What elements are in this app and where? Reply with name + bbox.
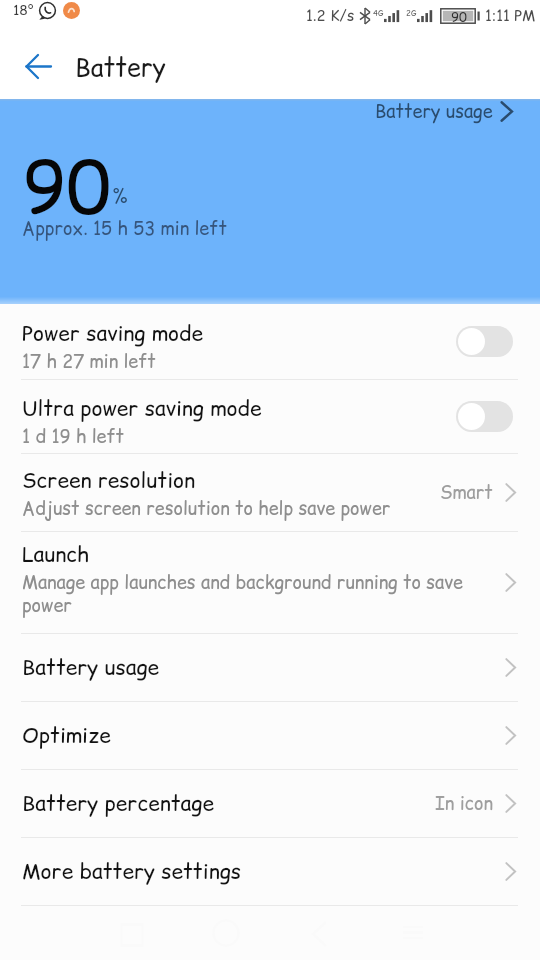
staticText: Optimize <box>22 721 111 750</box>
staticText: 1 d 19 h left <box>22 424 125 449</box>
button[interactable]: Launch <box>0 532 540 633</box>
button[interactable]: Ultra power saving mode <box>0 380 540 453</box>
staticText: Power saving mode <box>22 319 203 348</box>
staticText: Battery usage <box>22 653 160 682</box>
staticText: 4G <box>373 8 384 19</box>
button[interactable]: Back <box>19 47 57 85</box>
button[interactable]: Screen resolution <box>0 454 540 531</box>
staticText: More battery settings <box>22 857 242 886</box>
staticText: 90 <box>451 8 467 24</box>
button[interactable]: Battery usage <box>375 97 513 124</box>
staticText: 17 h 27 min left <box>22 349 156 374</box>
staticText: Approx. 15 h 53 min left <box>22 216 227 241</box>
staticText: 2G <box>406 8 417 19</box>
staticText: 1.2 K/s <box>306 5 355 26</box>
staticText: % <box>112 183 128 210</box>
staticText: Ultra power saving mode <box>22 394 262 423</box>
button[interactable]: Battery usage <box>0 634 540 701</box>
button[interactable]: More battery settings <box>0 838 540 905</box>
staticText: 90 <box>22 136 112 238</box>
staticText: Smart <box>440 480 493 505</box>
staticText: Battery usage <box>375 99 493 124</box>
button[interactable]: Power saving mode <box>0 304 540 379</box>
staticText: Launch <box>22 540 90 569</box>
staticText: In icon <box>435 791 493 816</box>
button[interactable]: Toggle Power saving mode <box>456 326 513 357</box>
staticText: 1:11 PM <box>485 5 536 26</box>
button[interactable]: Toggle Ultra power saving mode <box>456 401 513 432</box>
staticText: Manage app launches and background runni… <box>22 570 463 619</box>
staticText: Battery <box>75 50 166 85</box>
staticText: Battery percentage <box>22 789 214 818</box>
staticText: 18° <box>13 0 34 20</box>
staticText: Adjust screen resolution to help save po… <box>22 496 391 521</box>
button[interactable]: Battery percentage <box>0 770 540 837</box>
staticText: Screen resolution <box>22 466 196 495</box>
button[interactable]: Optimize <box>0 702 540 769</box>
